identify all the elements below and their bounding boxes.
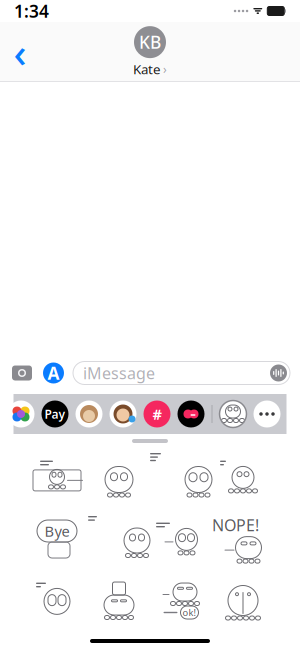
staticText: NOPE! bbox=[212, 514, 259, 536]
staticText: A bbox=[47, 361, 59, 384]
staticText: Kate bbox=[133, 60, 161, 78]
staticText: 1:34 bbox=[14, 0, 49, 22]
staticText: › bbox=[163, 61, 167, 77]
button[interactable]: More bbox=[253, 400, 280, 427]
staticText: ‹ bbox=[13, 25, 26, 78]
button[interactable]: iMessage bbox=[73, 361, 290, 384]
staticText: Pay bbox=[44, 406, 65, 422]
staticText: ok! bbox=[182, 606, 196, 619]
button[interactable]: iMessage Apps bbox=[43, 361, 64, 384]
staticText: KB bbox=[139, 31, 161, 54]
button[interactable]: Memoji Stickers bbox=[109, 400, 136, 427]
button[interactable]: Back bbox=[0, 28, 40, 76]
button[interactable]: Digital Touch bbox=[177, 400, 204, 427]
staticText: Bye bbox=[44, 521, 69, 541]
staticText: iMessage bbox=[83, 362, 155, 384]
button[interactable]: Photos bbox=[7, 400, 34, 427]
button[interactable]: Ghost Stickers bbox=[219, 400, 246, 427]
button[interactable]: Apple Pay bbox=[41, 400, 68, 427]
staticText: # bbox=[152, 404, 161, 424]
button[interactable]: Camera bbox=[10, 362, 34, 384]
button[interactable]: Images bbox=[143, 400, 170, 427]
button[interactable]: KB bbox=[133, 26, 167, 78]
button[interactable]: Memoji bbox=[75, 400, 102, 427]
